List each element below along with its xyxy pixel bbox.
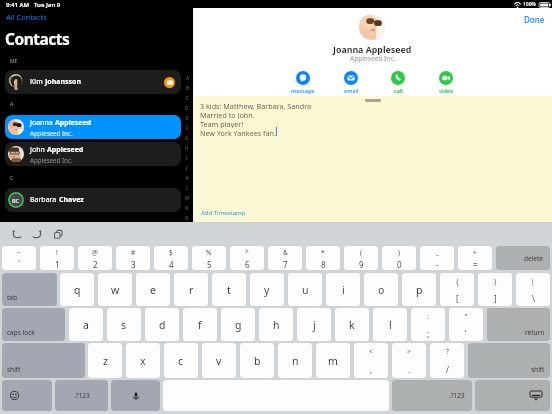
button[interactable]: } [478, 273, 512, 306]
staticText: All Contacts [6, 12, 47, 22]
staticText: r [189, 283, 194, 297]
button[interactable]: > [392, 343, 426, 378]
button[interactable]: v [202, 343, 236, 378]
button[interactable]: Joanna [5, 115, 181, 139]
staticText: 4 [169, 259, 174, 270]
button[interactable]: ~ [2, 246, 36, 270]
button[interactable]: l [373, 308, 407, 341]
staticText: Chavez [59, 195, 84, 205]
staticText: o [378, 283, 385, 297]
staticText: t [227, 283, 231, 297]
staticText: ~ [17, 248, 21, 257]
button[interactable]: j [297, 308, 331, 341]
staticText: C [10, 175, 14, 182]
button[interactable]: n [278, 343, 312, 378]
staticText: delete [524, 254, 544, 263]
button[interactable]: { [440, 273, 474, 306]
button[interactable]: ( [344, 246, 378, 270]
button[interactable]: @ [78, 246, 112, 270]
button[interactable]: $ [154, 246, 188, 270]
button[interactable]: Redo [33, 230, 42, 239]
staticText: * [321, 248, 325, 257]
button[interactable]: Done [524, 14, 545, 25]
button[interactable]: + [458, 246, 492, 270]
button[interactable]: ? [430, 343, 464, 378]
button[interactable]: return [487, 308, 550, 341]
button[interactable]: ^ [230, 246, 264, 270]
button[interactable]: h [259, 308, 293, 341]
staticText: @ [92, 248, 98, 257]
button[interactable]: t [212, 273, 246, 306]
button[interactable]: shift [2, 343, 85, 378]
button[interactable]: < [354, 343, 388, 378]
button[interactable]: p [402, 273, 436, 306]
staticText: Barbara [30, 195, 57, 205]
staticText: + [473, 248, 477, 257]
staticText: - [436, 259, 439, 270]
button[interactable]: # [116, 246, 150, 270]
staticText: Done [524, 14, 545, 25]
button[interactable]: .?123 [55, 380, 108, 411]
staticText: ` [18, 259, 21, 270]
button[interactable]: f [183, 308, 217, 341]
staticText: Appleseed [47, 145, 84, 155]
button[interactable]: Paste [54, 230, 63, 239]
staticText: Add Timestamp [201, 209, 246, 217]
button[interactable]: tab [2, 273, 57, 306]
button[interactable]: ) [382, 246, 416, 270]
button[interactable]: u [288, 273, 322, 306]
staticText: Joanna [30, 118, 53, 128]
button[interactable]: r [174, 273, 208, 306]
button[interactable]: g [221, 308, 255, 341]
staticText: [ [456, 293, 459, 304]
button[interactable]: k [335, 308, 369, 341]
button[interactable]: w [98, 273, 132, 306]
button[interactable]: Hide keyboard [475, 380, 550, 411]
button[interactable]: email [335, 71, 367, 94]
button[interactable]: John [5, 142, 181, 166]
button[interactable]: x [126, 343, 160, 378]
button[interactable]: ! [40, 246, 74, 270]
button[interactable]: % [192, 246, 226, 270]
staticText: 1 [55, 259, 60, 270]
button[interactable]: o [364, 273, 398, 306]
button[interactable]: delete [496, 246, 550, 270]
button[interactable]: All Contacts [6, 12, 47, 22]
button[interactable]: a [69, 308, 103, 341]
staticText: 5 [207, 259, 212, 270]
button[interactable]: m [316, 343, 350, 378]
button[interactable]: e [136, 273, 170, 306]
button[interactable]: _ [420, 246, 454, 270]
button[interactable]: & [268, 246, 302, 270]
button[interactable]: y [250, 273, 284, 306]
button[interactable]: * [306, 246, 340, 270]
button[interactable]: Add Timestamp [201, 209, 246, 217]
button[interactable]: shift [468, 343, 550, 378]
staticText: message [291, 87, 315, 94]
button[interactable]: caps lock [2, 308, 65, 341]
button[interactable]: s [107, 308, 141, 341]
button[interactable]: q [60, 273, 94, 306]
button[interactable]: message [287, 71, 319, 94]
button[interactable]: BC [5, 188, 181, 212]
button[interactable]: call [382, 71, 414, 94]
button[interactable]: | [516, 273, 550, 306]
staticText: : [427, 312, 429, 321]
staticText: L [186, 185, 189, 191]
button[interactable]: z [88, 343, 122, 378]
button[interactable]: b [240, 343, 274, 378]
button[interactable]: Emoji [2, 380, 52, 411]
staticText: call [394, 87, 403, 94]
staticText: = [473, 259, 478, 270]
button[interactable]: Dictate [111, 380, 160, 411]
button[interactable]: Undo [12, 230, 21, 239]
button[interactable]: i [326, 273, 360, 306]
button[interactable]: ” [449, 308, 483, 341]
button[interactable]: c [164, 343, 198, 378]
button[interactable]: .?123 [392, 380, 472, 411]
button[interactable]: d [145, 308, 179, 341]
button[interactable]: video [430, 71, 462, 94]
button[interactable]: : [411, 308, 445, 341]
button[interactable]: Kim [5, 70, 181, 94]
